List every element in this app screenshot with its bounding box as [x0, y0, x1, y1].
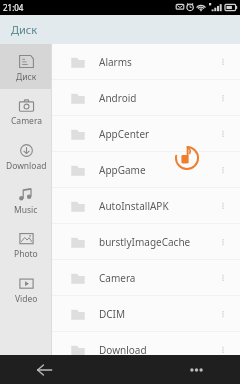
staticText: Android [99, 91, 137, 105]
button[interactable]: burstlyImageCache [52, 224, 240, 259]
button[interactable]: More options [212, 159, 234, 181]
staticText: Диск [11, 22, 38, 37]
button[interactable]: More options [212, 339, 234, 355]
staticText: Photo [14, 248, 38, 260]
button[interactable]: Alarms [52, 44, 240, 79]
button[interactable]: More options [212, 51, 234, 73]
button[interactable]: DCIM [52, 296, 240, 331]
button[interactable]: More options [212, 231, 234, 253]
button[interactable]: More [182, 356, 210, 384]
button[interactable]: Download [52, 332, 240, 355]
staticText: Video [15, 293, 38, 305]
button[interactable]: More options [212, 123, 234, 145]
button[interactable]: Camera [0, 88, 52, 133]
staticText: Alarms [99, 55, 132, 69]
staticText: Camera [11, 115, 42, 127]
staticText: 21:04 [3, 2, 24, 13]
staticText: AppGame [99, 163, 146, 177]
button[interactable]: Android [52, 80, 240, 115]
button[interactable]: Camera [52, 260, 240, 295]
button[interactable]: Download [0, 133, 52, 178]
button[interactable]: More options [212, 267, 234, 289]
button[interactable]: Music player [174, 145, 200, 171]
button[interactable]: More options [212, 303, 234, 325]
button[interactable]: Back [30, 356, 58, 384]
button[interactable]: Диск [0, 44, 52, 89]
button[interactable]: Music [0, 177, 52, 222]
staticText: AutoInstallAPK [99, 199, 169, 213]
staticText: Download [99, 343, 147, 355]
staticText: Диск [16, 71, 37, 83]
staticText: Music [14, 204, 38, 216]
button[interactable]: Photo [0, 221, 52, 266]
button[interactable]: AutoInstallAPK [52, 188, 240, 223]
staticText: DCIM [99, 307, 126, 321]
button[interactable]: AppCenter [52, 116, 240, 151]
staticText: burstlyImageCache [99, 235, 191, 249]
button[interactable]: Video [0, 266, 52, 311]
button[interactable]: More options [212, 195, 234, 217]
staticText: Download [6, 160, 47, 172]
staticText: Camera [99, 271, 136, 285]
staticText: AppCenter [99, 127, 150, 141]
button[interactable]: More options [212, 87, 234, 109]
button[interactable]: AppGame [52, 152, 240, 187]
